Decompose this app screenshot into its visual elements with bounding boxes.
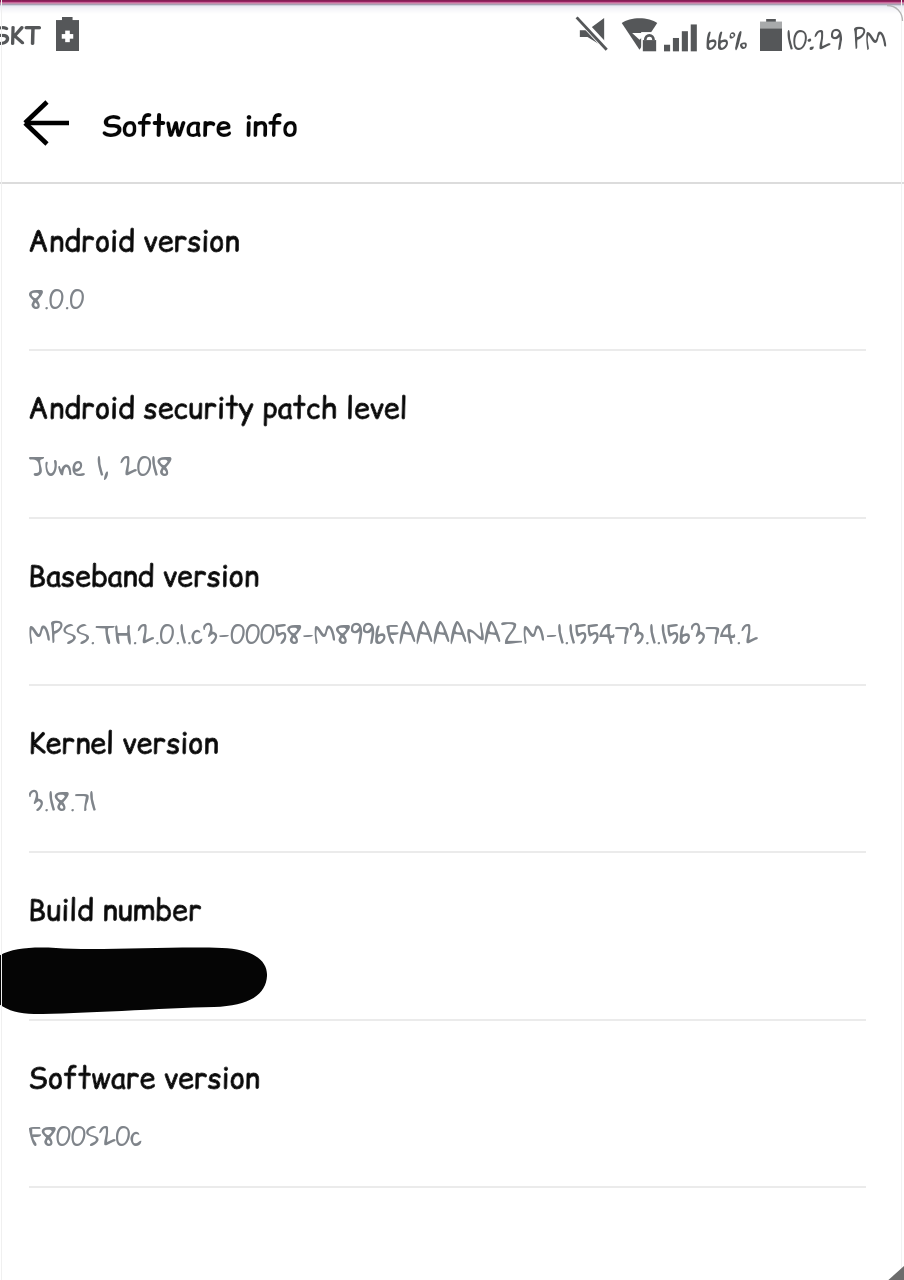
staticText: Android security patch level (28, 388, 408, 428)
button[interactable]: Navigate up (0, 85, 90, 175)
staticText: Android security patch level (28, 388, 408, 428)
button[interactable]: Kernel version (0, 685, 904, 852)
staticText: 3.18.71 (29, 775, 96, 825)
staticText: Software version (28, 1058, 260, 1098)
staticText: Kernel version (28, 723, 219, 763)
staticText: 8.0.0 (29, 273, 85, 323)
staticText: Software version (28, 1058, 260, 1098)
staticText: Software info (102, 105, 298, 145)
staticText: Build number (28, 890, 202, 930)
staticText: Kernel version (28, 723, 219, 763)
button[interactable]: Baseband version (0, 518, 904, 685)
button[interactable]: Software version (0, 1020, 904, 1187)
staticText: MPSS.TH.2.0.1.c3-00058-M8996FAAAANAZM-1.… (29, 608, 758, 658)
staticText: 66% (706, 15, 748, 65)
staticText: Build number (28, 890, 202, 930)
staticText: Baseband version (28, 556, 260, 596)
staticText: Android version (28, 221, 240, 261)
staticText: Baseband version (28, 556, 260, 596)
staticText: Android version (28, 221, 240, 261)
staticText: F800S20c (29, 1110, 143, 1160)
staticText: SKT (0, 19, 41, 52)
button[interactable]: Build number (0, 852, 904, 1019)
button[interactable]: Android security patch level (0, 350, 904, 517)
button[interactable]: Android version (0, 183, 904, 350)
staticText: June 1, 2018 (29, 440, 172, 490)
staticText: 10:29 PM (787, 15, 888, 65)
